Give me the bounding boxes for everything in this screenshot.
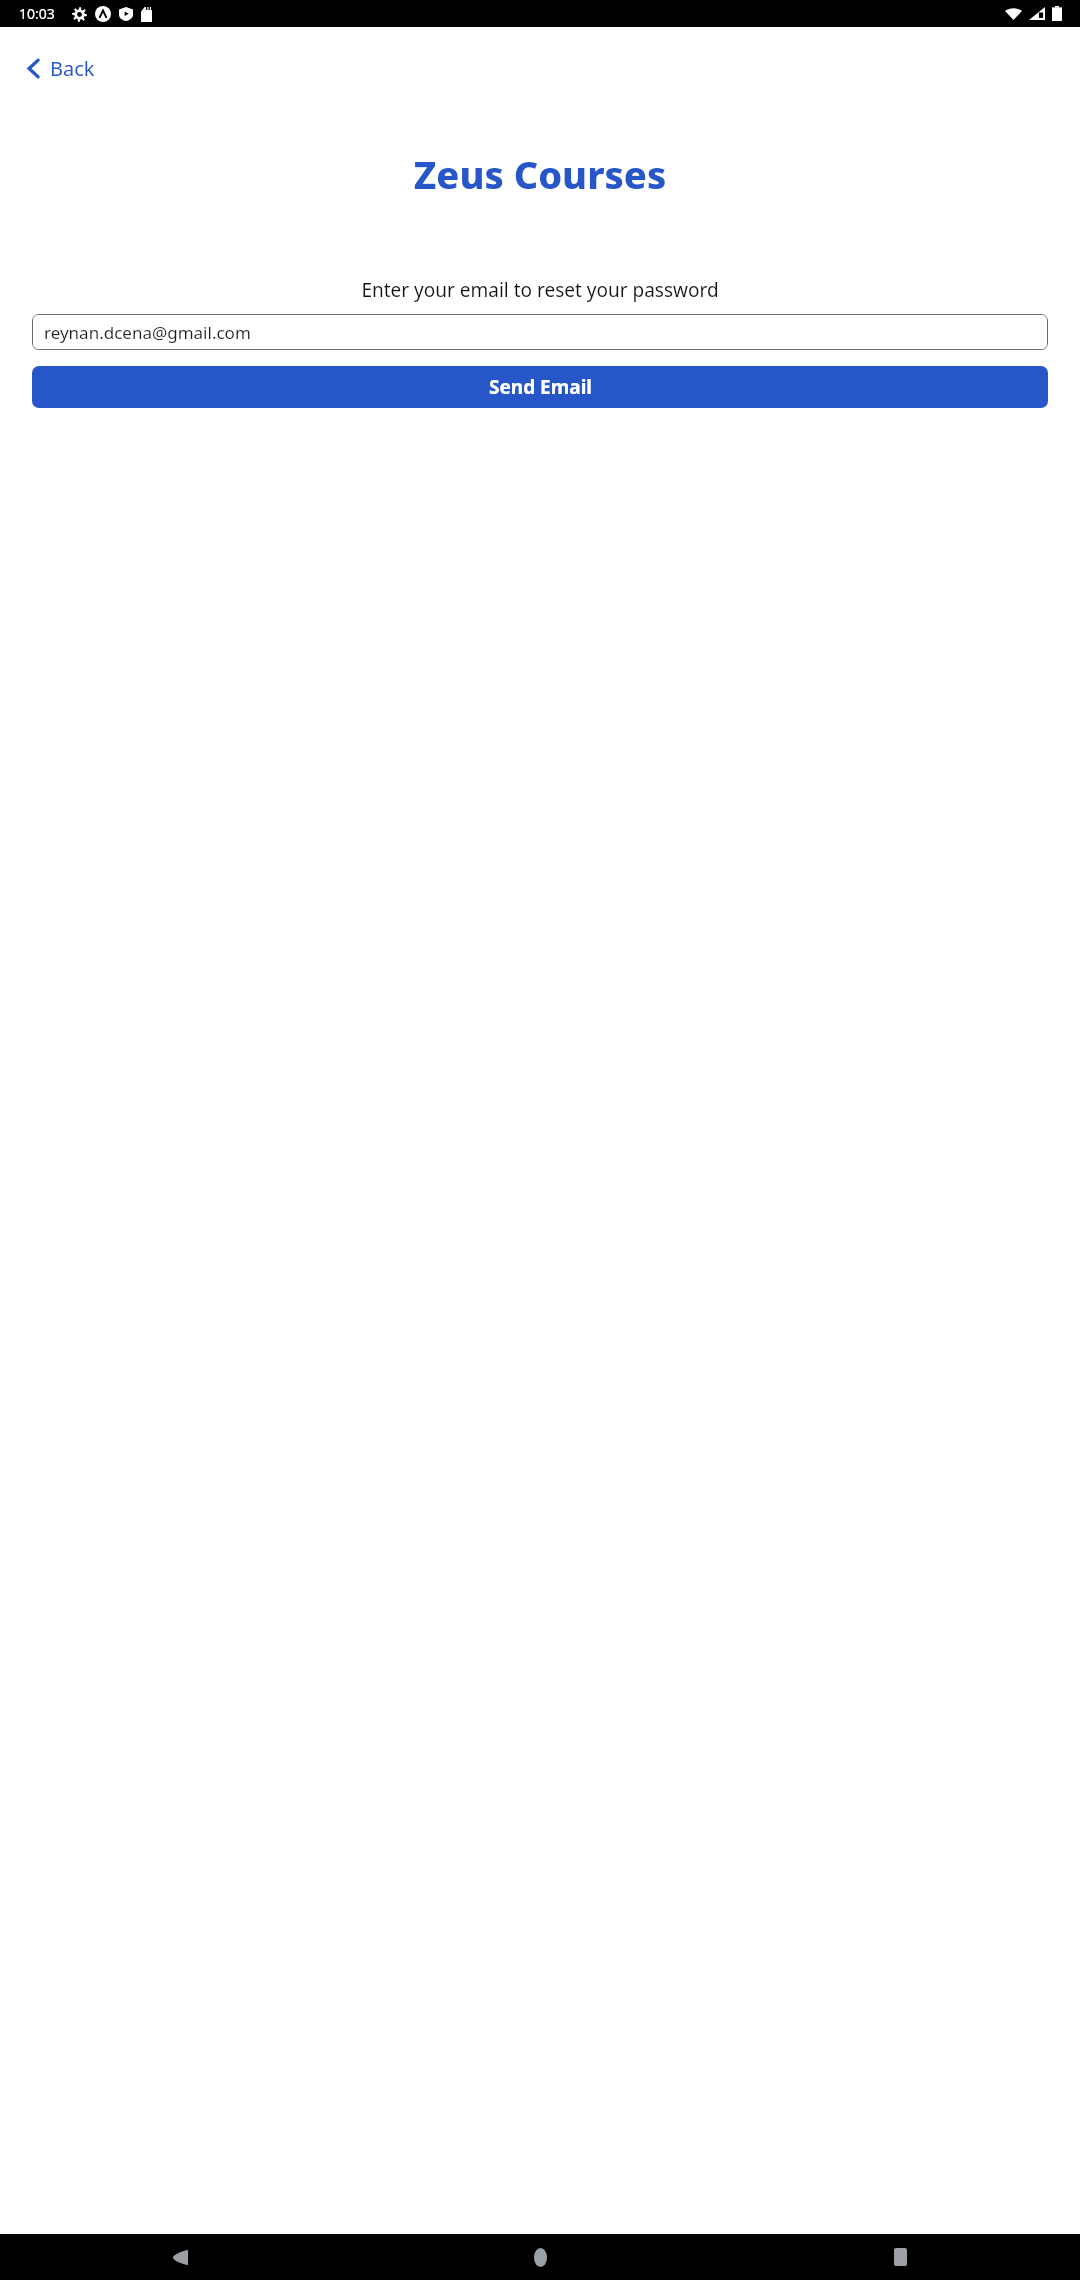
staticText: Zeus Courses [0, 148, 1080, 200]
staticText: Send Email [489, 374, 592, 400]
staticText: Back [50, 55, 95, 82]
button[interactable]: Back [20, 47, 103, 90]
button[interactable]: Back [0, 2234, 360, 2280]
staticText: reynan.dcena@gmail.com [44, 321, 251, 344]
button[interactable]: Send Email [32, 366, 1048, 408]
staticText: 10:03 [19, 4, 55, 23]
button[interactable]: Recent apps [720, 2234, 1080, 2280]
button[interactable]: Home [360, 2234, 720, 2280]
button[interactable]: reynan.dcena@gmail.com [32, 314, 1048, 350]
staticText: Enter your email to reset your password [0, 277, 1080, 303]
